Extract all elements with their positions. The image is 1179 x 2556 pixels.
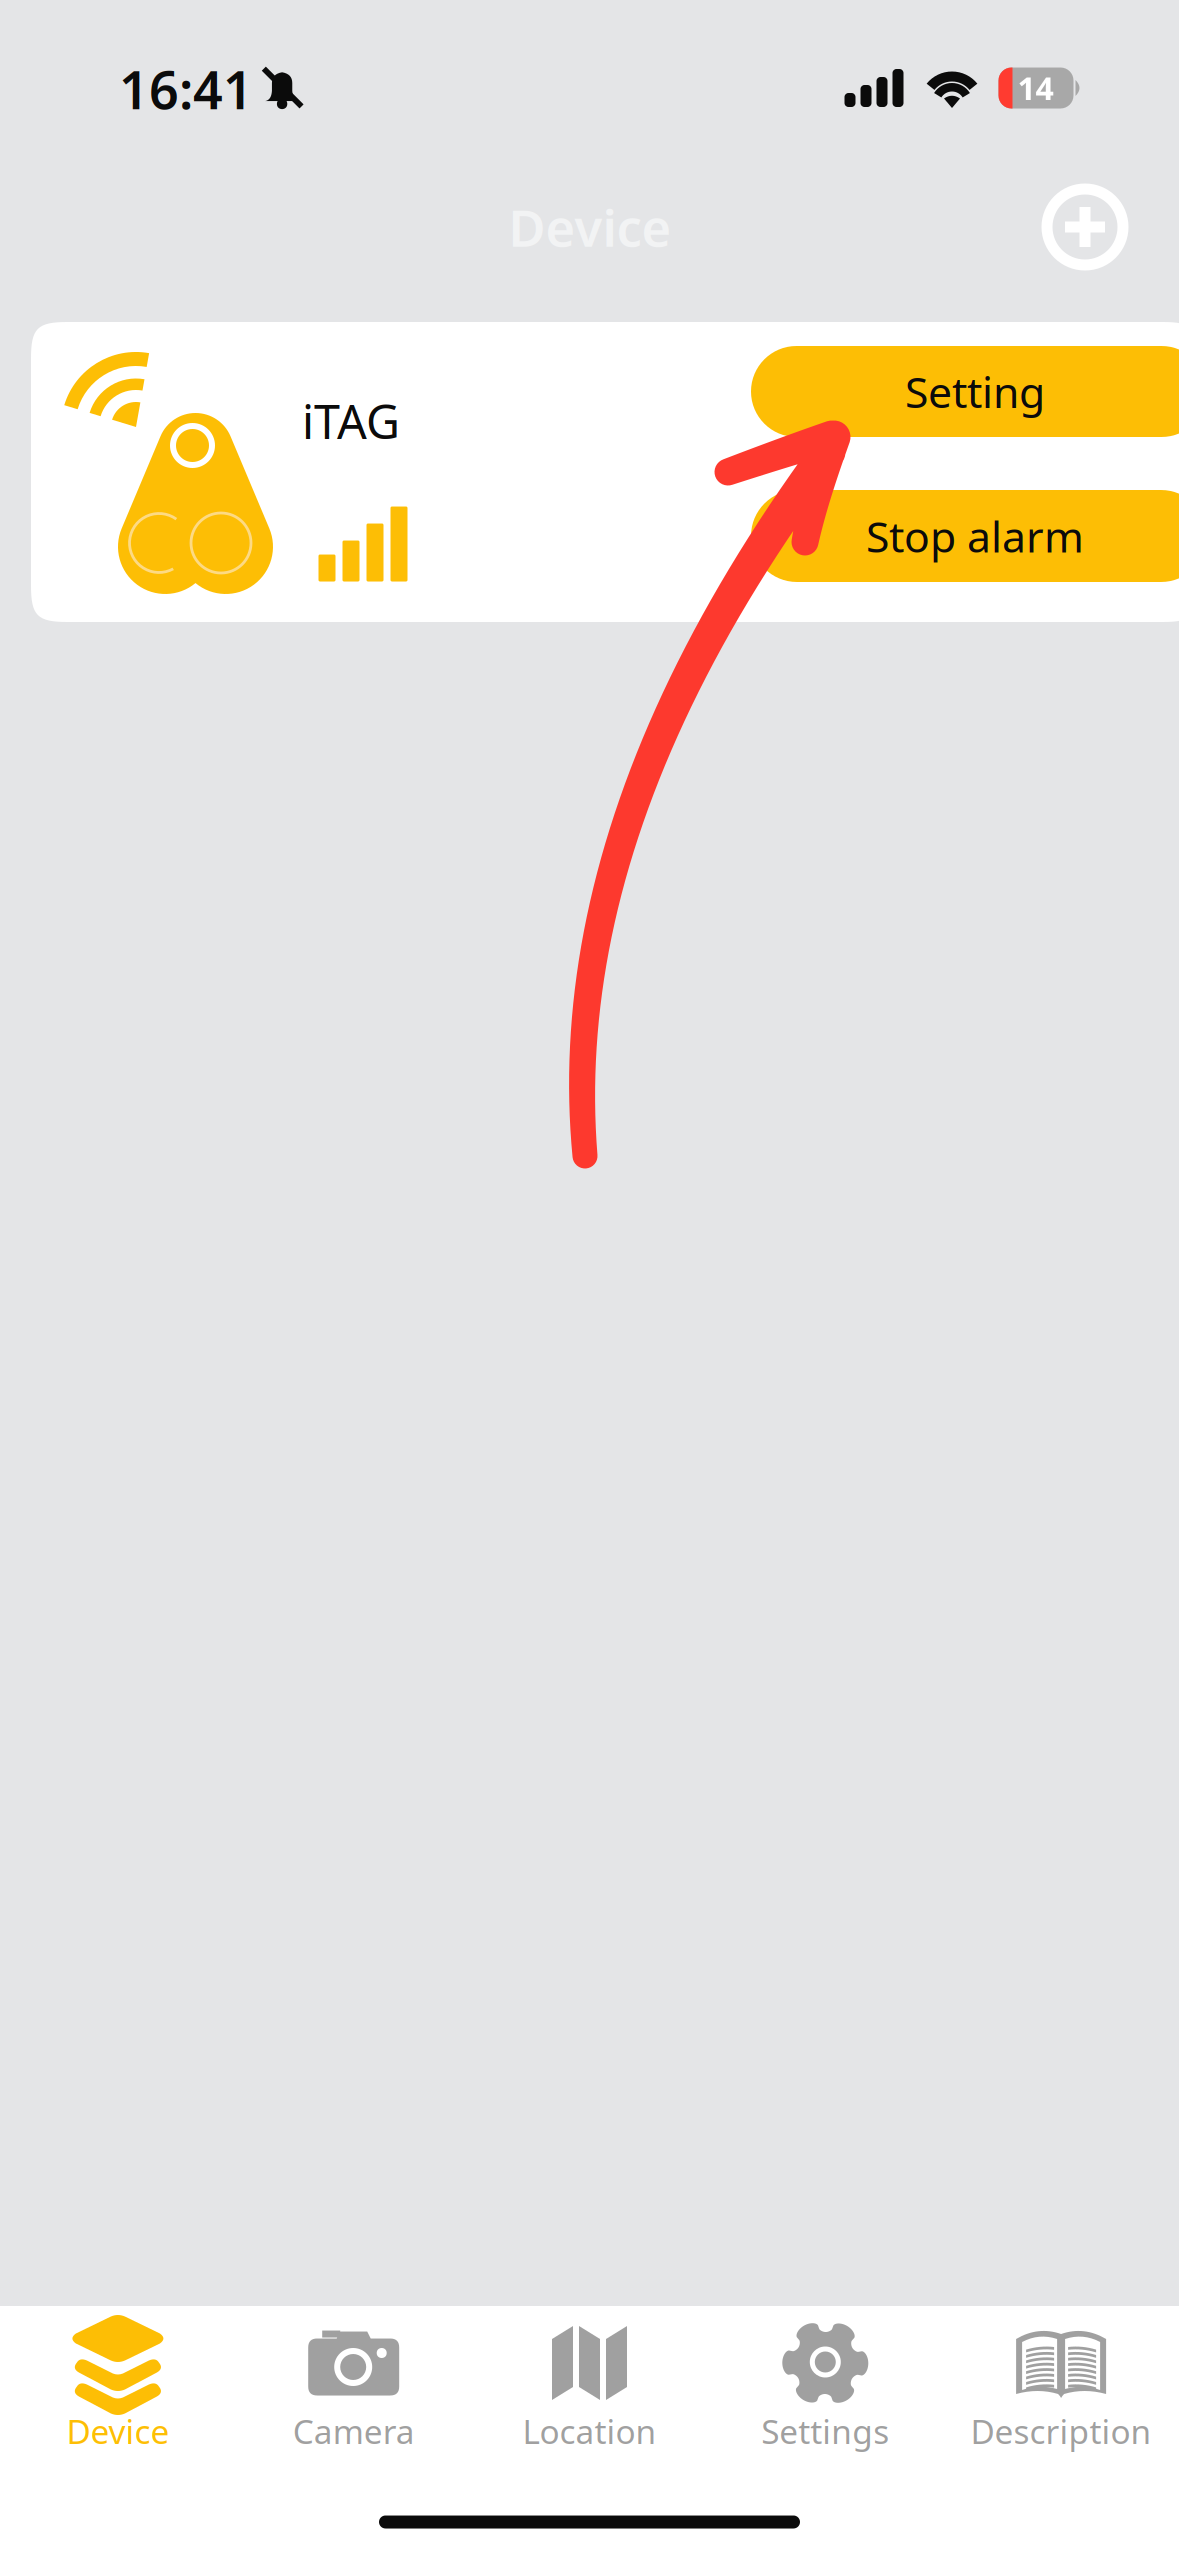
staticText: Stop alarm: [866, 508, 1084, 564]
button[interactable]: Device: [0, 2308, 236, 2460]
button[interactable]: Location: [472, 2308, 707, 2460]
staticText: 14: [1017, 67, 1053, 109]
staticText: iTAG: [302, 390, 400, 452]
button[interactable]: Settings: [707, 2308, 943, 2460]
button[interactable]: Description: [943, 2308, 1179, 2460]
staticText: 16:41: [119, 54, 253, 124]
staticText: Setting: [905, 363, 1045, 420]
staticText: Description: [971, 2409, 1152, 2453]
staticText: Settings: [761, 2409, 889, 2453]
staticText: Camera: [293, 2409, 415, 2453]
staticText: Location: [522, 2409, 656, 2453]
button[interactable]: Setting: [751, 346, 1179, 437]
button[interactable]: Add device: [1030, 172, 1140, 282]
staticText: Device: [508, 193, 671, 261]
staticText: Device: [66, 2409, 169, 2453]
button[interactable]: Stop alarm: [751, 490, 1179, 582]
button[interactable]: Camera: [236, 2308, 472, 2460]
